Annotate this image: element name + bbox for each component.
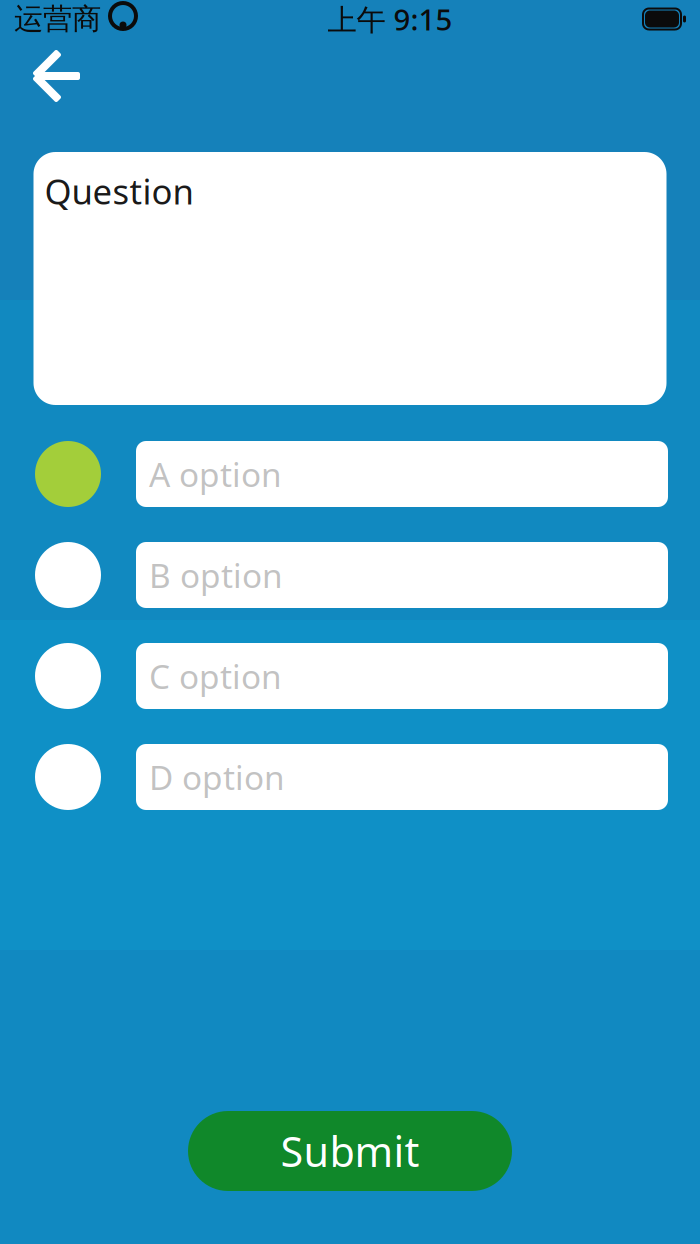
button[interactable]: Submit <box>188 1111 512 1191</box>
staticText: C option <box>149 654 282 698</box>
button[interactable]: D option <box>0 744 700 810</box>
staticText: B option <box>149 553 283 597</box>
staticText: Question <box>44 168 193 214</box>
staticText: 运营商 <box>14 1 101 37</box>
button[interactable]: A option <box>0 441 700 507</box>
staticText: Submit <box>280 1124 419 1178</box>
button[interactable]: C option <box>0 643 700 709</box>
staticText: A option <box>149 452 282 496</box>
staticText: 上午 9:15 <box>327 0 452 38</box>
button[interactable]: Back <box>19 40 91 112</box>
staticText: D option <box>149 755 285 799</box>
button[interactable]: B option <box>0 542 700 608</box>
